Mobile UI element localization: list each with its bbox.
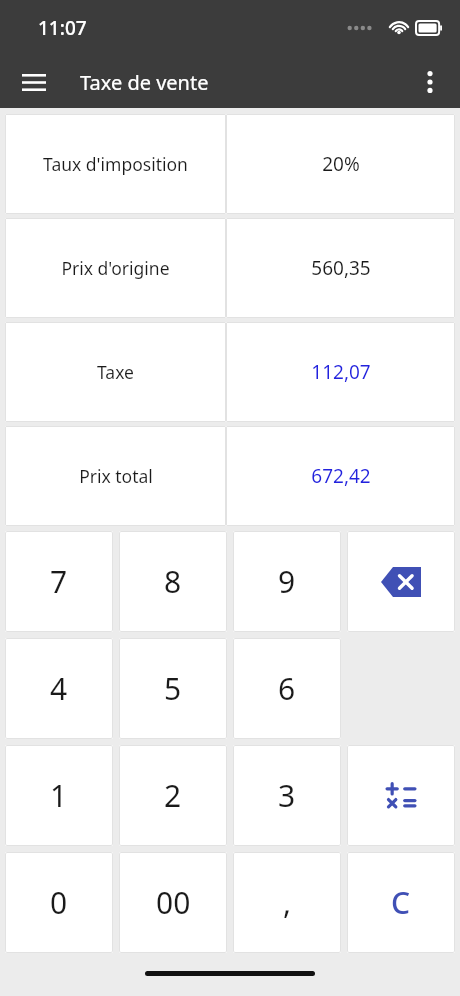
button[interactable]: Menu	[12, 60, 56, 104]
button[interactable]: Prix d'origine	[5, 218, 226, 318]
staticText: 0	[50, 882, 68, 923]
button[interactable]: 0	[5, 852, 113, 953]
staticText: 6	[278, 668, 296, 709]
button[interactable]: Taux d'imposition	[5, 114, 226, 214]
staticText: C	[391, 882, 411, 923]
button[interactable]: 00	[119, 852, 227, 953]
staticText: 1	[50, 775, 68, 816]
button[interactable]: 20%	[226, 114, 455, 214]
staticText: Taxe	[97, 360, 134, 384]
button[interactable]: 112,07	[226, 322, 455, 422]
button[interactable]: Prix total	[5, 426, 226, 526]
staticText: 4	[50, 668, 68, 709]
button[interactable]: 4	[5, 638, 113, 739]
staticText: 672,42	[311, 463, 371, 489]
button[interactable]: 3	[233, 745, 341, 846]
button[interactable]: 2	[119, 745, 227, 846]
staticText: 112,07	[311, 359, 371, 385]
button[interactable]: 6	[233, 638, 341, 739]
button[interactable]: 560,35	[226, 218, 455, 318]
button[interactable]: Taxe	[5, 322, 226, 422]
button[interactable]: ,	[233, 852, 341, 953]
staticText: 9	[278, 561, 296, 602]
staticText: ,	[283, 882, 292, 923]
staticText: 2	[164, 775, 182, 816]
button[interactable]: 8	[119, 531, 227, 632]
button[interactable]: More options	[408, 60, 452, 104]
staticText: 7	[50, 561, 68, 602]
button[interactable]: 9	[233, 531, 341, 632]
staticText: Prix d'origine	[61, 256, 170, 280]
button[interactable]: 672,42	[226, 426, 455, 526]
staticText: 00	[156, 882, 191, 923]
staticText: 11:07	[38, 15, 87, 41]
staticText: 560,35	[311, 255, 371, 281]
button[interactable]: C	[347, 852, 455, 953]
staticText: 5	[164, 668, 182, 709]
staticText: 8	[164, 561, 182, 602]
staticText: 3	[278, 775, 296, 816]
staticText: 20%	[322, 151, 360, 177]
button[interactable]: 1	[5, 745, 113, 846]
staticText: Taux d'imposition	[43, 152, 188, 176]
staticText: Prix total	[79, 464, 153, 488]
button[interactable]: 5	[119, 638, 227, 739]
button[interactable]: 7	[5, 531, 113, 632]
button[interactable]: Backspace	[347, 531, 455, 632]
button[interactable]: Operations	[347, 745, 455, 846]
staticText: Taxe de vente	[80, 69, 209, 96]
